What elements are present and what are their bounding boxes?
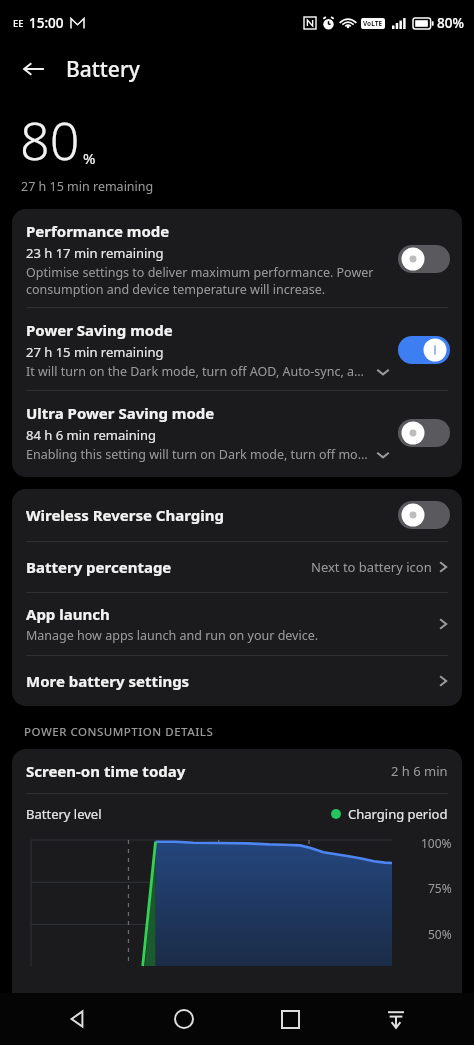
staticText: App launch xyxy=(26,604,110,624)
staticText: Manage how apps launch and run on your d… xyxy=(26,627,319,644)
button[interactable]: Wireless Reverse Charging xyxy=(12,489,462,541)
button[interactable]: Power Saving mode xyxy=(12,308,462,390)
staticText: Battery xyxy=(66,55,140,84)
button[interactable]: Screen-on time today xyxy=(12,749,462,793)
staticText: % xyxy=(83,148,96,168)
button[interactable]: Toggle on xyxy=(398,336,450,364)
button[interactable]: More battery settings xyxy=(12,656,462,706)
staticText: Charging period xyxy=(348,805,448,823)
staticText: VoLTE xyxy=(363,19,383,28)
button[interactable]: Back xyxy=(50,993,106,1045)
button[interactable]: Toggle off xyxy=(398,419,450,447)
staticText: 80 xyxy=(20,104,80,175)
staticText: Power Saving mode xyxy=(26,320,173,340)
button[interactable]: Toggle off xyxy=(398,501,450,529)
button[interactable]: Home xyxy=(156,993,212,1045)
staticText: 23 h 17 min remaining xyxy=(26,244,164,262)
button[interactable]: App launch xyxy=(12,593,462,655)
staticText: Enabling this setting will turn on Dark … xyxy=(26,446,368,463)
staticText: 27 h 15 min remaining xyxy=(21,178,154,195)
staticText: 27 h 15 min remaining xyxy=(26,343,164,361)
staticText: Battery percentage xyxy=(26,557,311,577)
button[interactable]: Back xyxy=(18,53,50,85)
staticText: Screen-on time today xyxy=(26,761,391,781)
staticText: Optimise settings to deliver maximum per… xyxy=(26,264,384,297)
staticText: Performance mode xyxy=(26,221,170,241)
button[interactable]: Ultra Power Saving mode xyxy=(12,391,462,477)
staticText: Next to battery icon xyxy=(311,558,432,576)
staticText: Wireless Reverse Charging xyxy=(26,505,398,525)
button[interactable]: Performance mode xyxy=(12,209,462,307)
staticText: 2 h 6 min xyxy=(391,762,448,780)
staticText: Battery level xyxy=(26,805,331,823)
staticText: 100% xyxy=(421,835,452,851)
staticText: POWER CONSUMPTION DETAILS xyxy=(24,724,214,740)
staticText: EE xyxy=(13,17,24,30)
staticText: Ultra Power Saving mode xyxy=(26,403,215,423)
button[interactable]: Toggle off xyxy=(398,245,450,273)
staticText: It will turn on the Dark mode, turn off … xyxy=(26,363,368,380)
button[interactable]: Hide navigation bar xyxy=(368,993,424,1045)
button[interactable]: Battery percentage xyxy=(12,542,462,592)
staticText: 75% xyxy=(428,880,452,896)
staticText: 50% xyxy=(428,926,452,942)
staticText: 15:00 xyxy=(29,14,64,32)
button[interactable]: Recent apps xyxy=(262,993,318,1045)
staticText: 84 h 6 min remaining xyxy=(26,426,157,444)
staticText: More battery settings xyxy=(26,671,435,691)
staticText: 80% xyxy=(437,14,464,32)
